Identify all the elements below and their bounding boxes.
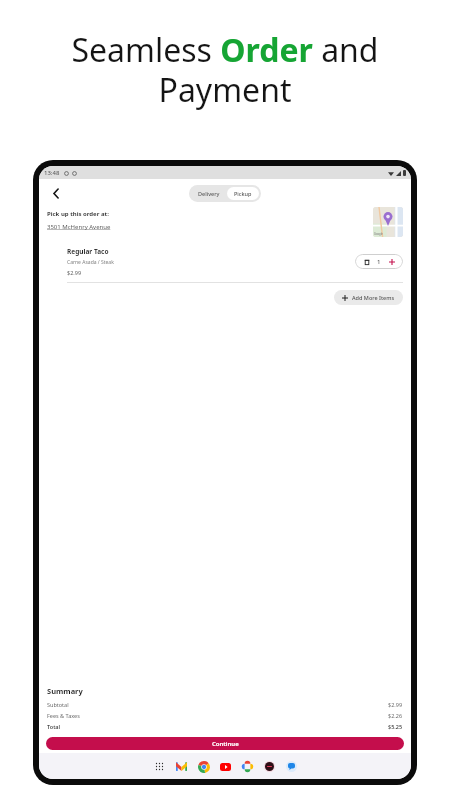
button[interactable]: Pickup (227, 187, 259, 200)
staticText: Fees & Taxes (47, 712, 80, 719)
staticText: Pickup (234, 190, 252, 197)
button[interactable]: Add one (387, 257, 396, 266)
staticText: $2.99 (388, 701, 403, 708)
staticText: $2.26 (388, 712, 403, 719)
staticText: $2.99 (67, 269, 82, 276)
button[interactable]: Continue (46, 737, 404, 750)
button[interactable]: Add More Items (334, 290, 403, 305)
button[interactable]: App (263, 760, 276, 773)
button[interactable]: All apps (153, 760, 166, 773)
staticText: Total (47, 723, 61, 730)
staticText: 3501 McHenry Avenue (47, 223, 111, 231)
staticText: Add More Items (352, 294, 395, 301)
button[interactable]: Chrome (197, 760, 210, 773)
button[interactable]: Delivery (191, 187, 227, 200)
button[interactable]: Map (373, 207, 403, 237)
button[interactable]: Messages (285, 760, 298, 773)
button[interactable]: Gmail (175, 760, 188, 773)
staticText: Carne Asada / Steak (67, 259, 114, 266)
button[interactable]: Photos (241, 760, 254, 773)
staticText: Pick up this order at: (47, 210, 109, 218)
button[interactable]: Regular Taco (39, 241, 411, 282)
button[interactable]: Remove item (362, 257, 371, 266)
staticText: Continue (212, 740, 239, 748)
staticText: $5.25 (388, 723, 403, 730)
staticText: Delivery (198, 190, 220, 197)
button[interactable]: 3501 McHenry Avenue (47, 223, 111, 231)
staticText: Summary (47, 686, 83, 696)
staticText: Regular Taco (67, 247, 109, 256)
button[interactable]: YouTube (219, 760, 232, 773)
button[interactable]: Back (47, 184, 65, 202)
staticText: 13:48 (44, 169, 60, 177)
staticText: Seamless Order and Payment (22, 28, 428, 112)
staticText: Subtotal (47, 701, 69, 708)
staticText: Google (374, 232, 383, 236)
staticText: 1 (377, 258, 381, 266)
